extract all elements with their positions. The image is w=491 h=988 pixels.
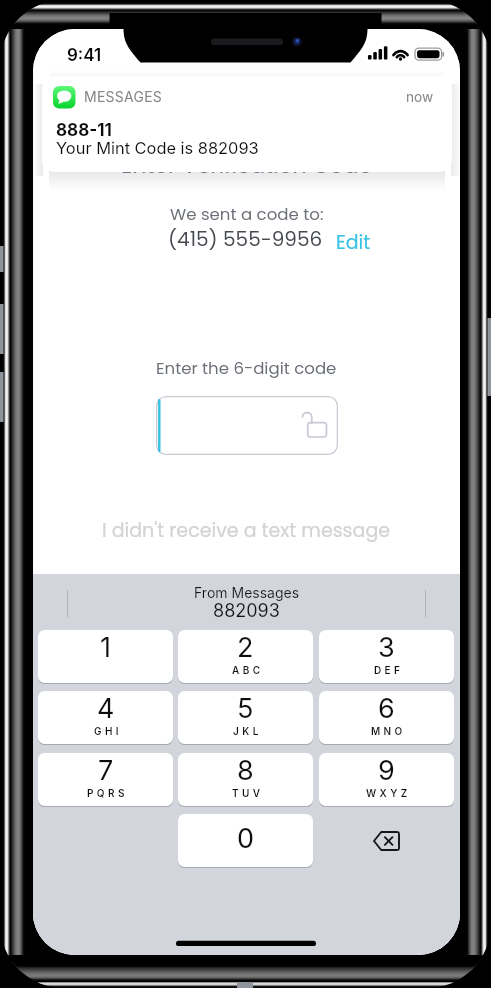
button[interactable]: 1 — [38, 630, 173, 683]
button[interactable]: 6-digit code input — [156, 396, 338, 455]
button[interactable]: 4 — [38, 691, 173, 744]
button[interactable]: 8 — [178, 753, 313, 806]
staticText: Your Mint Code is 882093 — [56, 138, 259, 158]
staticText: We sent a code to: — [170, 203, 324, 226]
staticText: 6 — [378, 692, 395, 725]
staticText: 2 — [237, 631, 254, 664]
staticText: 8 — [237, 754, 254, 787]
button[interactable]: 6 — [319, 691, 454, 744]
staticText: 9:41 — [67, 45, 102, 66]
staticText: 9 — [378, 754, 395, 787]
button[interactable]: 5 — [178, 691, 313, 744]
staticText: now — [406, 89, 434, 106]
staticText: 882093 — [213, 600, 280, 622]
staticText: GHI — [94, 725, 122, 737]
button[interactable]: 2 — [178, 630, 313, 683]
button[interactable]: 0 — [178, 814, 313, 867]
button[interactable]: Edit — [336, 229, 371, 256]
button[interactable]: MESSAGES — [42, 76, 452, 172]
staticText: (415) 555-9956 — [168, 225, 323, 253]
button[interactable]: 3 — [319, 630, 454, 683]
staticText: Enter the 6-digit code — [156, 357, 337, 380]
staticText: 7 — [98, 754, 114, 787]
staticText: 1 — [100, 631, 111, 664]
staticText: WXYZ — [366, 787, 411, 799]
staticText: 5 — [237, 692, 254, 725]
staticText: From Messages — [194, 584, 300, 601]
button[interactable]: I didn't receive a text message — [33, 517, 460, 547]
staticText: Edit — [336, 229, 371, 256]
staticText: MESSAGES — [84, 88, 163, 105]
button[interactable]: Delete — [319, 814, 454, 867]
staticText: PQRS — [87, 787, 128, 799]
button[interactable]: 7 — [38, 753, 173, 806]
staticText: I didn't receive a text message — [102, 517, 391, 544]
staticText: TUV — [232, 787, 264, 799]
staticText: 0 — [237, 822, 255, 855]
staticText: DEF — [374, 664, 404, 676]
staticText: ABC — [232, 664, 264, 676]
staticText: 888-11 — [56, 120, 112, 141]
staticText: MNO — [371, 725, 406, 737]
staticText: 4 — [97, 692, 115, 725]
staticText: 3 — [378, 631, 395, 664]
staticText: Enter Verification Code — [121, 150, 373, 181]
staticText: JKL — [233, 725, 262, 737]
button[interactable]: 9 — [319, 753, 454, 806]
